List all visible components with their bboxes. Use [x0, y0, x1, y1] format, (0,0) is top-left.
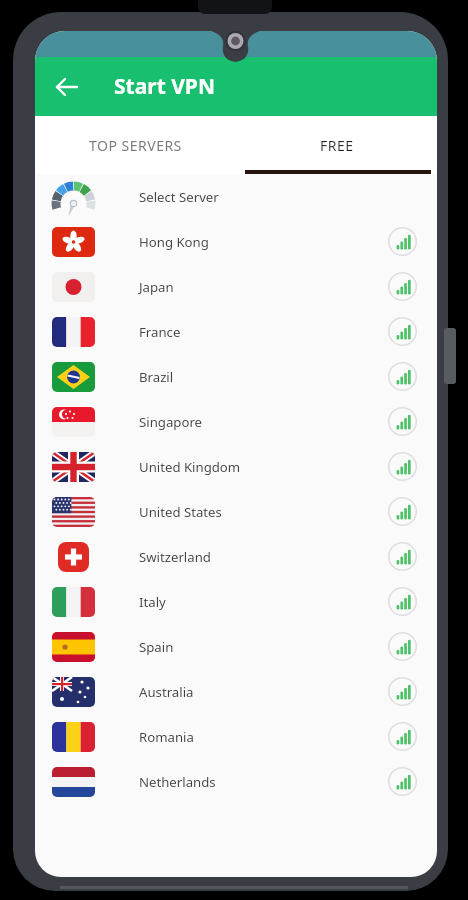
button[interactable]: Australia: [35, 669, 437, 714]
staticText: United Kingdom: [139, 458, 241, 476]
staticText: Brazil: [139, 368, 174, 386]
staticText: Netherlands: [139, 773, 216, 791]
button[interactable]: Singapore: [35, 399, 437, 444]
button[interactable]: Brazil: [35, 354, 437, 399]
button[interactable]: United Kingdom: [35, 444, 437, 489]
button[interactable]: Switzerland: [35, 534, 437, 579]
button[interactable]: Select Server: [35, 174, 437, 219]
button[interactable]: Hong Kong: [35, 219, 437, 264]
button[interactable]: FREE: [236, 116, 437, 174]
staticText: Start VPN: [114, 72, 215, 101]
staticText: FREE: [320, 136, 354, 155]
button[interactable]: France: [35, 309, 437, 354]
button[interactable]: [53, 73, 81, 101]
staticText: Singapore: [139, 413, 203, 431]
button[interactable]: Netherlands: [35, 759, 437, 804]
staticText: Italy: [139, 593, 166, 611]
button[interactable]: Romania: [35, 714, 437, 759]
staticText: Australia: [139, 683, 194, 701]
button[interactable]: Japan: [35, 264, 437, 309]
staticText: Romania: [139, 728, 194, 746]
button[interactable]: United States: [35, 489, 437, 534]
staticText: Spain: [139, 638, 174, 656]
staticText: France: [139, 323, 181, 341]
staticText: TOP SERVERS: [89, 136, 182, 155]
button[interactable]: TOP SERVERS: [35, 116, 236, 174]
button[interactable]: Spain: [35, 624, 437, 669]
staticText: Japan: [139, 278, 174, 296]
staticText: United States: [139, 503, 222, 521]
staticText: Select Server: [139, 188, 219, 206]
staticText: Hong Kong: [139, 233, 209, 251]
button[interactable]: Italy: [35, 579, 437, 624]
staticText: Switzerland: [139, 548, 211, 566]
